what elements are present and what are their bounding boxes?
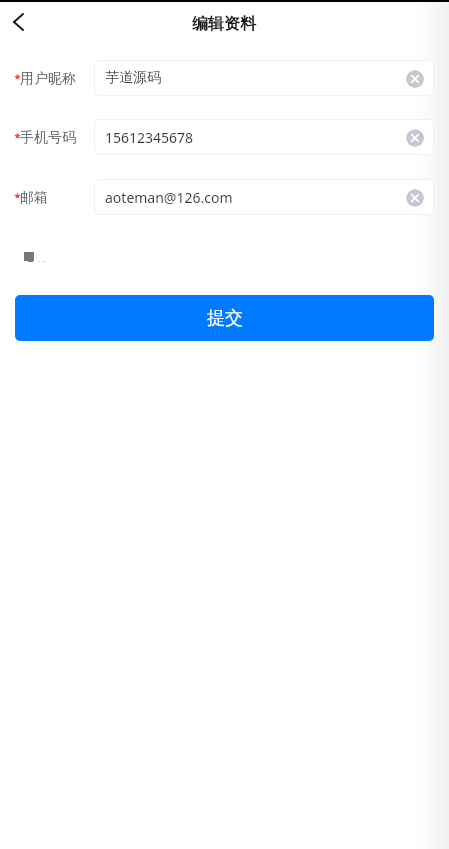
staticText: 提交 xyxy=(207,307,243,330)
button[interactable]: 提交 xyxy=(15,295,434,341)
button[interactable]: Clear text xyxy=(406,129,424,147)
staticText: 邮箱 xyxy=(20,189,48,207)
button[interactable]: Clear text xyxy=(406,70,424,88)
staticText: aoteman@126.com xyxy=(105,188,233,207)
button[interactable]: 芋道源码 xyxy=(94,60,434,96)
staticText: 编辑资料 xyxy=(192,14,256,34)
button[interactable]: 15612345678 xyxy=(94,119,434,155)
staticText: 15612345678 xyxy=(105,128,194,147)
staticText: 手机号码 xyxy=(20,129,76,147)
staticText: 芋道源码 xyxy=(105,69,161,87)
button[interactable]: Clear text xyxy=(406,189,424,207)
staticText: 用户昵称 xyxy=(20,70,76,88)
button[interactable]: aoteman@126.com xyxy=(94,179,434,215)
button[interactable]: Back xyxy=(0,1,44,45)
